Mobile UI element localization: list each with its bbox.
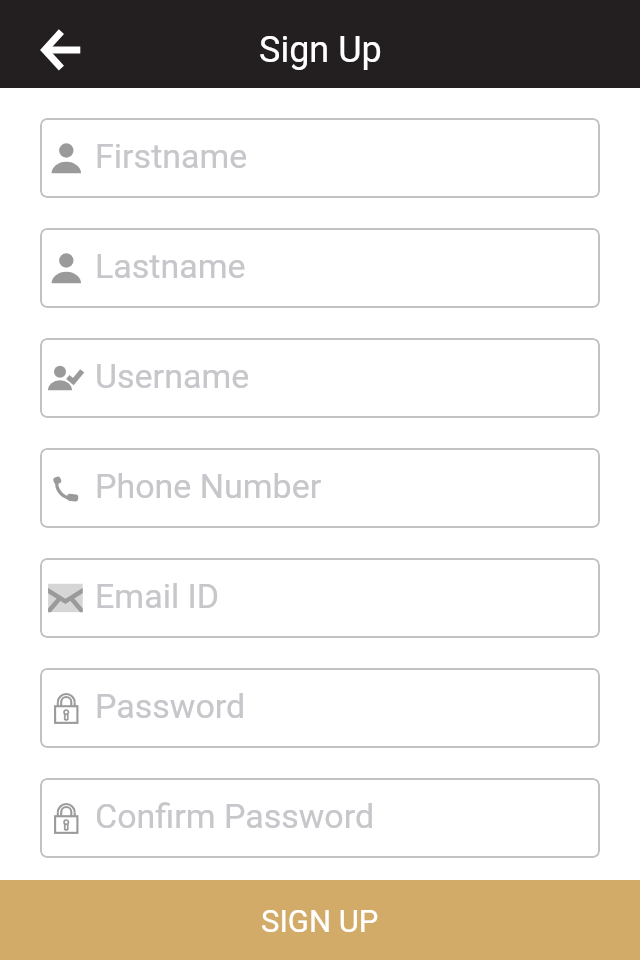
- button[interactable]: Confirm Password: [40, 778, 600, 858]
- staticText: Phone Number: [95, 466, 322, 506]
- button[interactable]: Email ID: [40, 558, 600, 638]
- staticText: Lastname: [95, 246, 246, 286]
- staticText: Password: [95, 686, 246, 726]
- button[interactable]: Firstname: [40, 118, 600, 198]
- staticText: Confirm Password: [95, 796, 375, 836]
- button[interactable]: SIGN UP: [0, 880, 640, 960]
- button[interactable]: Password: [40, 668, 600, 748]
- staticText: SIGN UP: [261, 903, 379, 939]
- button[interactable]: Back: [0, 0, 88, 88]
- staticText: Email ID: [95, 576, 220, 616]
- button[interactable]: Lastname: [40, 228, 600, 308]
- button[interactable]: Phone Number: [40, 448, 600, 528]
- staticText: Username: [95, 356, 250, 396]
- button[interactable]: Username: [40, 338, 600, 418]
- staticText: Firstname: [95, 136, 248, 176]
- staticText: Sign Up: [259, 29, 382, 71]
